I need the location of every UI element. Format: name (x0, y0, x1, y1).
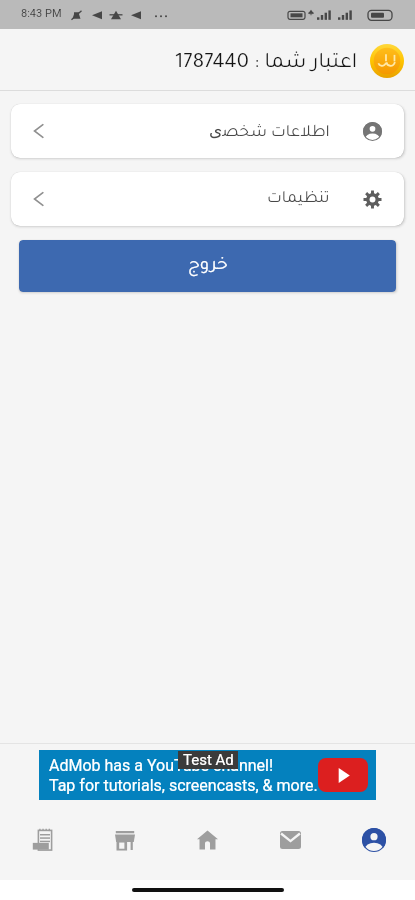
button[interactable]: خروج (19, 240, 396, 292)
staticText: اطلاعات شخصی (209, 120, 330, 142)
button[interactable]: Store (83, 810, 166, 870)
staticText: Test Ad (183, 751, 234, 769)
button[interactable]: Account (332, 810, 415, 870)
staticText: تنظيمات (267, 191, 330, 208)
button[interactable]: Home (166, 810, 249, 870)
staticText: خروج (188, 257, 228, 276)
button[interactable]: اطلاعات شخصی (11, 104, 404, 158)
button[interactable]: Orders (0, 810, 83, 870)
staticText: Tap for tutorials, screencasts, & more. (49, 776, 318, 795)
button[interactable]: AdMob has a YouTube channel! (39, 750, 376, 800)
staticText: AdMob has a YouTube channel! (49, 756, 274, 775)
button[interactable]: Messages (249, 810, 332, 870)
button[interactable]: تنظيمات (11, 172, 404, 226)
staticText: اعتبار شما : 1787440 (175, 53, 358, 75)
staticText: 8:43 PM (21, 7, 62, 20)
